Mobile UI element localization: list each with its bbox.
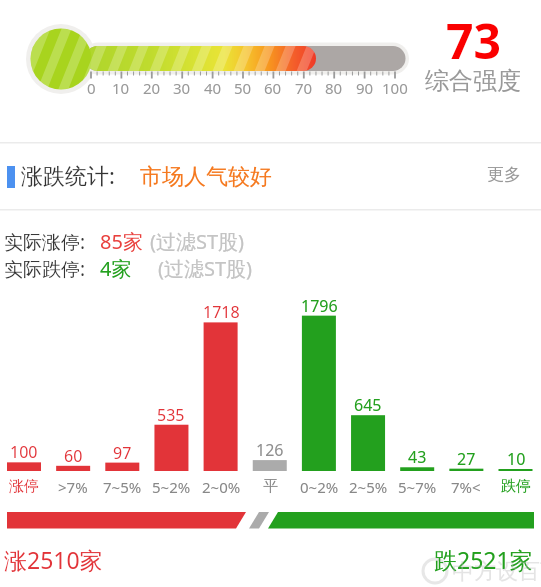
staticText: 2~0% [202, 477, 241, 497]
staticText: 535 [157, 404, 185, 426]
staticText: 85家 [100, 228, 143, 255]
button[interactable]: 更多 [487, 164, 521, 185]
staticText: 2~5% [349, 477, 388, 497]
staticText: 40 [204, 78, 222, 98]
staticText: (过滤ST股) [150, 228, 245, 255]
button[interactable]: >7% [48, 477, 98, 497]
staticText: 50 [234, 78, 252, 98]
staticText: 70 [295, 78, 313, 98]
staticText: 跌2521家 [434, 544, 533, 575]
staticText: 90 [356, 78, 374, 98]
staticText: 20 [143, 78, 161, 98]
staticText: 市场人气较好 [140, 163, 272, 191]
staticText: 综合强度 [425, 66, 521, 96]
staticText: 73 [446, 8, 501, 73]
staticText: 100 [10, 441, 38, 463]
staticText: 中方设百万 [452, 558, 541, 586]
staticText: 实际涨停: [4, 229, 86, 255]
button[interactable]: 7%< [441, 477, 491, 497]
button[interactable]: 2~0% [196, 477, 246, 497]
button[interactable]: 涨跌统计: [21, 160, 115, 190]
staticText: 645 [354, 394, 382, 416]
staticText: 5~2% [152, 477, 191, 497]
staticText: 10 [112, 78, 130, 98]
button[interactable]: 市场人气较好 [140, 163, 272, 191]
button[interactable]: 0~2% [294, 477, 344, 497]
staticText: 30 [173, 78, 191, 98]
button[interactable]: 2~5% [343, 477, 393, 497]
staticText: (过滤ST股) [158, 255, 253, 282]
staticText: 126 [256, 439, 284, 461]
staticText: 涨跌统计: [21, 160, 115, 190]
staticText: 0~2% [300, 477, 339, 497]
staticText: 实际跌停: [4, 256, 86, 282]
staticText: 平 [263, 477, 278, 496]
staticText: 1718 [203, 301, 240, 323]
staticText: 0 [87, 78, 96, 98]
staticText: 7~5% [103, 477, 142, 497]
staticText: 1796 [301, 295, 338, 317]
staticText: 涨停 [9, 477, 39, 496]
button[interactable]: 5~7% [392, 477, 442, 497]
staticText: 27 [457, 448, 476, 470]
staticText: 60 [264, 78, 282, 98]
button[interactable]: 7~5% [97, 477, 147, 497]
staticText: 涨2510家 [4, 544, 103, 575]
staticText: 5~7% [398, 477, 437, 497]
button[interactable]: 5~2% [146, 477, 196, 497]
staticText: 7%< [451, 477, 481, 497]
staticText: 更多 [487, 164, 521, 185]
staticText: 97 [113, 442, 132, 464]
button[interactable]: 跌停 [491, 477, 541, 496]
staticText: 80 [325, 78, 343, 98]
button[interactable]: 平 [245, 477, 295, 496]
staticText: 4家 [100, 255, 132, 282]
staticText: 10 [507, 448, 526, 470]
staticText: 跌停 [501, 477, 531, 496]
staticText: 43 [408, 446, 427, 468]
staticText: 100 [382, 78, 408, 98]
staticText: >7% [58, 477, 88, 497]
staticText: 60 [64, 445, 83, 467]
button[interactable]: 涨停 [0, 477, 49, 496]
